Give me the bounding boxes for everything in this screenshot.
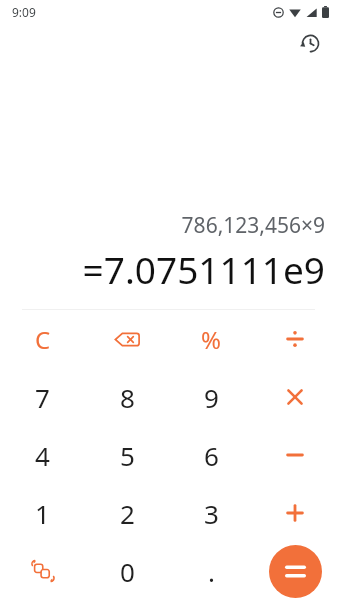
button[interactable]: Divide — [253, 310, 337, 368]
staticText: 6 — [204, 438, 219, 473]
staticText: 1 — [35, 496, 50, 531]
button[interactable]: Plus — [253, 484, 337, 542]
button[interactable]: 3 — [169, 484, 253, 542]
button[interactable]: 0 — [85, 542, 169, 600]
button[interactable]: 1 — [0, 484, 85, 542]
button[interactable]: Minus — [253, 426, 337, 484]
button[interactable]: 2 — [85, 484, 169, 542]
staticText: 7 — [35, 380, 50, 415]
button[interactable]: 9 — [169, 368, 253, 426]
button[interactable]: 4 — [0, 426, 85, 484]
button[interactable]: Backspace — [85, 310, 169, 368]
button[interactable]: Unit converter — [0, 542, 85, 600]
staticText: C — [35, 323, 51, 356]
staticText: 2 — [120, 496, 135, 531]
button[interactable]: % — [169, 310, 253, 368]
button[interactable]: History — [292, 25, 328, 61]
staticText: =7.0751111e9 — [82, 244, 325, 294]
button[interactable]: C — [0, 310, 85, 368]
staticText: 786,123,456×9 — [181, 211, 325, 240]
button[interactable]: Multiply — [253, 368, 337, 426]
button[interactable]: 8 — [85, 368, 169, 426]
staticText: 9:09 — [12, 4, 36, 20]
staticText: 9 — [204, 380, 219, 415]
staticText: 4 — [35, 438, 50, 473]
button[interactable]: 5 — [85, 426, 169, 484]
staticText: 8 — [120, 380, 135, 415]
staticText: . — [208, 554, 215, 589]
staticText: % — [201, 323, 221, 356]
staticText: 3 — [204, 496, 219, 531]
button[interactable]: 7 — [0, 368, 85, 426]
button[interactable]: . — [169, 542, 253, 600]
staticText: 5 — [120, 438, 135, 473]
staticText: 0 — [120, 554, 135, 589]
button[interactable]: Equals — [269, 545, 322, 598]
button[interactable]: 6 — [169, 426, 253, 484]
